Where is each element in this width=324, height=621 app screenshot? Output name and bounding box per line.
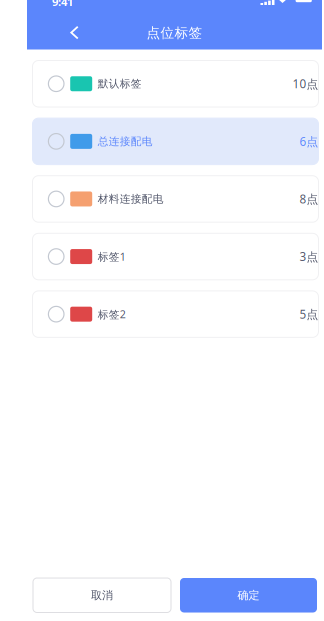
button[interactable]: 标签2 (32, 291, 318, 337)
staticText: 8点 (299, 191, 318, 207)
staticText: 9:41 (52, 0, 73, 9)
button[interactable]: 取消 (33, 578, 171, 612)
staticText: 总连接配电 (98, 135, 153, 148)
button[interactable]: 默认标签 (32, 60, 318, 107)
button[interactable]: 总连接配电 (32, 118, 318, 165)
staticText: 10点 (292, 76, 318, 92)
staticText: 3点 (299, 249, 318, 265)
button[interactable]: Back (57, 16, 91, 50)
staticText: 确定 (237, 588, 259, 602)
button[interactable]: 确定 (180, 578, 317, 612)
staticText: 标签1 (98, 249, 126, 264)
button[interactable]: 材料连接配电 (32, 176, 318, 222)
staticText: 6点 (299, 133, 318, 149)
staticText: 材料连接配电 (98, 192, 164, 206)
staticText: 标签2 (98, 307, 126, 321)
button[interactable]: 标签1 (32, 233, 318, 280)
staticText: 取消 (91, 588, 113, 602)
staticText: 5点 (299, 306, 318, 322)
staticText: 点位标签 (146, 24, 202, 41)
staticText: 默认标签 (98, 77, 142, 90)
